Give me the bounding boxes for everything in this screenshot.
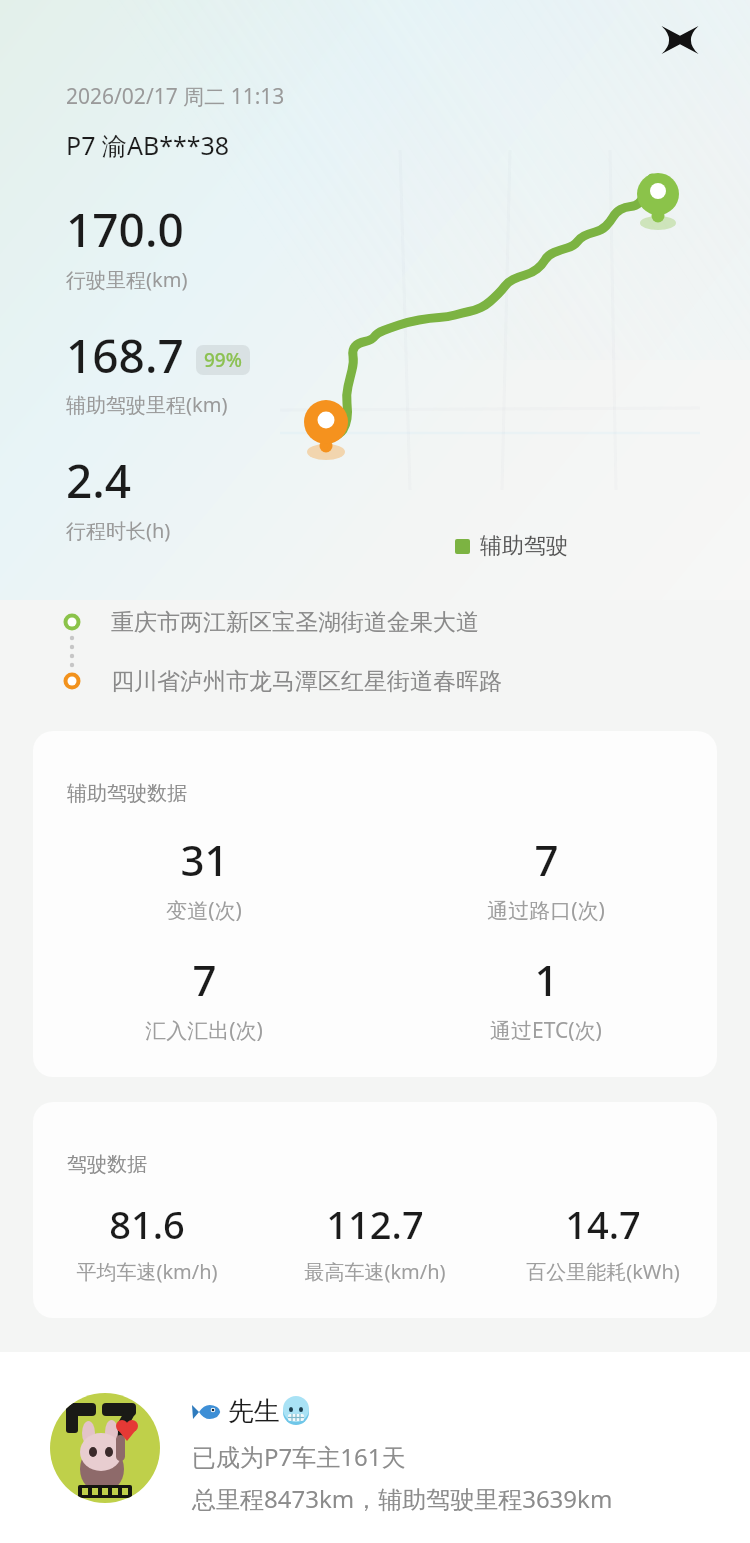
- staticText: 99%: [204, 347, 242, 373]
- staticText: P7 渝AB***38: [66, 128, 230, 162]
- staticText: 7: [192, 951, 217, 1008]
- staticText: 百公里能耗(kWh): [526, 1258, 680, 1285]
- staticText: 辅助驾驶数据: [67, 781, 187, 806]
- staticText: 168.7: [66, 324, 184, 387]
- staticText: 变道(次): [166, 896, 242, 925]
- staticText: 行程时长(h): [66, 517, 171, 544]
- staticText: 重庆市两江新区宝圣湖街道金果大道: [111, 608, 479, 637]
- staticText: 四川省泸州市龙马潭区红星街道春晖路: [111, 667, 502, 696]
- button[interactable]: 先生: [50, 1393, 613, 1513]
- staticText: 平均车速(km/h): [76, 1258, 218, 1285]
- staticText: 1: [534, 951, 559, 1008]
- staticText: 2026/02/17 周二 11:13: [66, 82, 285, 111]
- staticText: 汇入汇出(次): [145, 1016, 263, 1045]
- button[interactable]: 驾驶数据: [33, 1102, 717, 1318]
- staticText: 通过ETC(次): [490, 1016, 602, 1045]
- staticText: 81.6: [109, 1198, 185, 1250]
- staticText: 辅助驾驶: [480, 532, 568, 560]
- staticText: 先生: [228, 1395, 280, 1428]
- staticText: 通过路口(次): [487, 896, 605, 925]
- staticText: 7: [534, 831, 559, 888]
- button[interactable]: 辅助驾驶数据: [33, 731, 717, 1077]
- button[interactable]: 重庆市两江新区宝圣湖街道金果大道: [56, 605, 676, 705]
- staticText: 驾驶数据: [67, 1152, 147, 1177]
- staticText: 170.0: [66, 198, 184, 261]
- staticText: 总里程8473km，辅助驾驶里程3639km: [192, 1482, 613, 1515]
- button[interactable]: Close: [650, 10, 710, 70]
- staticText: 112.7: [326, 1198, 424, 1250]
- staticText: 辅助驾驶里程(km): [66, 391, 228, 418]
- staticText: 14.7: [565, 1198, 641, 1250]
- staticText: 2.4: [66, 449, 132, 512]
- staticText: 已成为P7车主161天: [192, 1440, 406, 1473]
- staticText: 最高车速(km/h): [304, 1258, 446, 1285]
- staticText: 行驶里程(km): [66, 266, 188, 293]
- staticText: 31: [180, 831, 229, 888]
